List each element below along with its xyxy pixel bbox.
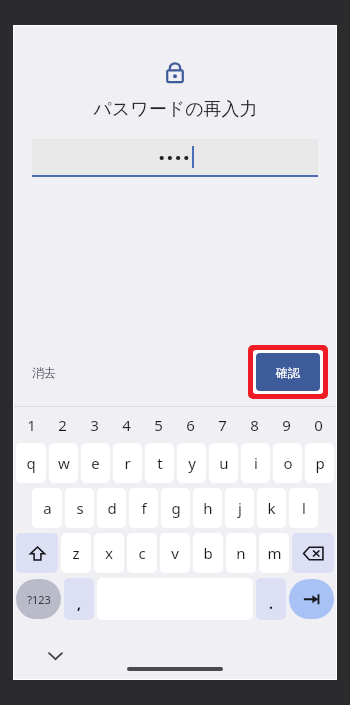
- staticText: 2: [58, 415, 67, 435]
- staticText: a: [43, 498, 52, 518]
- button[interactable]: v: [160, 533, 190, 573]
- button[interactable]: Enter: [289, 579, 334, 619]
- staticText: 消去: [32, 365, 56, 380]
- staticText: .: [269, 594, 273, 613]
- button[interactable]: o: [273, 443, 302, 483]
- other: Lock: [162, 60, 188, 86]
- staticText: v: [171, 543, 179, 563]
- button[interactable]: Shift: [16, 533, 58, 573]
- staticText: 4: [122, 415, 131, 435]
- staticText: b: [203, 543, 213, 563]
- button[interactable]: e: [81, 443, 110, 483]
- staticText: z: [72, 543, 80, 563]
- button[interactable]: 5: [142, 410, 174, 440]
- button[interactable]: 確認: [256, 353, 320, 391]
- staticText: q: [26, 453, 36, 473]
- staticText: ,: [77, 594, 81, 613]
- staticText: e: [91, 453, 100, 473]
- button[interactable]: .: [256, 578, 286, 620]
- button[interactable]: c: [127, 533, 157, 573]
- button[interactable]: 8: [238, 410, 270, 440]
- button[interactable]: i: [241, 443, 270, 483]
- staticText: i: [254, 453, 258, 473]
- staticText: ?123: [27, 592, 51, 607]
- staticText: y: [188, 453, 196, 473]
- button[interactable]: r: [113, 443, 142, 483]
- staticText: 9: [282, 415, 291, 435]
- button[interactable]: 9: [270, 410, 302, 440]
- staticText: 1: [27, 415, 36, 435]
- button[interactable]: n: [226, 533, 256, 573]
- staticText: u: [219, 453, 229, 473]
- button[interactable]: Backspace: [292, 533, 334, 573]
- staticText: 0: [314, 415, 323, 435]
- staticText: パスワードの再入力: [93, 98, 258, 121]
- button[interactable]: m: [259, 533, 289, 573]
- staticText: p: [315, 453, 325, 473]
- staticText: f: [141, 498, 147, 518]
- button[interactable]: y: [177, 443, 206, 483]
- staticText: g: [171, 498, 181, 518]
- button[interactable]: f: [129, 488, 158, 528]
- staticText: k: [267, 498, 276, 518]
- staticText: r: [124, 453, 131, 473]
- button[interactable]: u: [209, 443, 238, 483]
- button[interactable]: g: [161, 488, 190, 528]
- button[interactable]: ,: [64, 578, 94, 620]
- staticText: t: [157, 453, 163, 473]
- button[interactable]: d: [97, 488, 126, 528]
- button[interactable]: k: [257, 488, 286, 528]
- staticText: c: [138, 543, 146, 563]
- button[interactable]: 3: [78, 410, 110, 440]
- button[interactable]: b: [193, 533, 223, 573]
- button[interactable]: x: [94, 533, 124, 573]
- button[interactable]: 1: [16, 410, 47, 440]
- staticText: d: [107, 498, 117, 518]
- button[interactable]: 2: [47, 410, 78, 440]
- staticText: x: [105, 543, 113, 563]
- button[interactable]: q: [16, 443, 46, 483]
- staticText: 3: [90, 415, 99, 435]
- staticText: 確認: [276, 365, 300, 380]
- button[interactable]: a: [32, 488, 62, 528]
- button[interactable]: 4: [110, 410, 142, 440]
- button[interactable]: p: [305, 443, 334, 483]
- button[interactable]: h: [193, 488, 222, 528]
- button[interactable]: ?123: [16, 579, 61, 619]
- button[interactable]: 7: [206, 410, 238, 440]
- staticText: n: [236, 543, 246, 563]
- staticText: 6: [186, 415, 195, 435]
- staticText: o: [283, 453, 293, 473]
- button[interactable]: j: [225, 488, 254, 528]
- staticText: 7: [218, 415, 227, 435]
- staticText: s: [76, 498, 84, 518]
- button[interactable]: 消去: [28, 361, 60, 384]
- staticText: 8: [250, 415, 259, 435]
- button[interactable]: w: [49, 443, 78, 483]
- button[interactable]: l: [289, 488, 318, 528]
- staticText: l: [302, 498, 306, 518]
- staticText: 5: [154, 415, 163, 435]
- button[interactable]: 0: [302, 410, 334, 440]
- button[interactable]: z: [61, 533, 91, 573]
- button[interactable]: t: [145, 443, 174, 483]
- staticText: j: [238, 498, 242, 518]
- staticText: h: [203, 498, 213, 518]
- button[interactable]: [32, 139, 318, 175]
- button[interactable]: Hide keyboard: [42, 643, 68, 669]
- button[interactable]: s: [65, 488, 94, 528]
- staticText: m: [267, 543, 282, 563]
- button[interactable]: 6: [174, 410, 206, 440]
- staticText: w: [58, 453, 70, 473]
